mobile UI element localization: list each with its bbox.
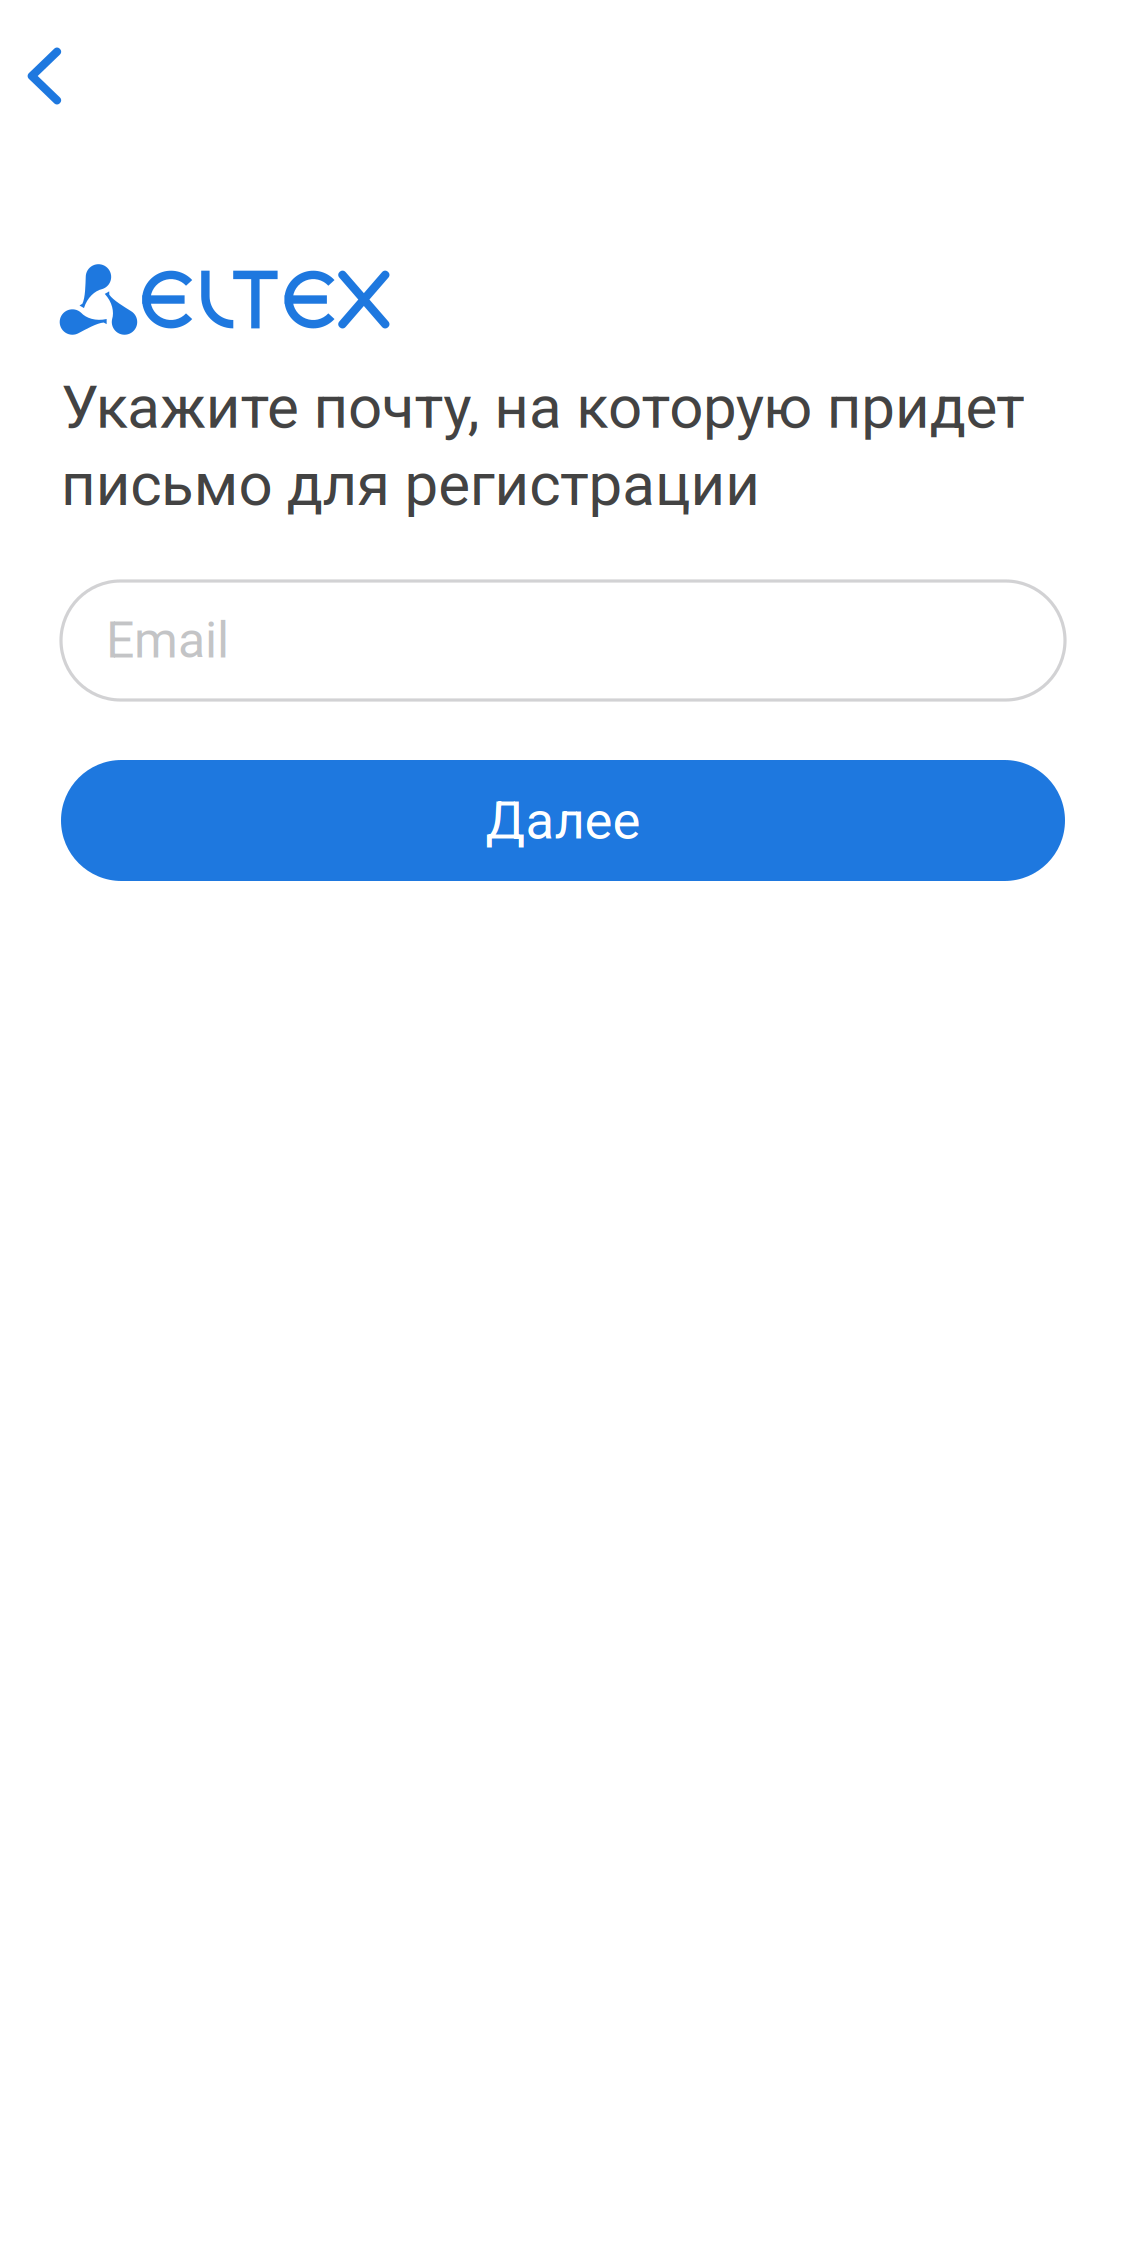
button[interactable]: Далее (61, 760, 1065, 881)
staticText: Email (106, 611, 229, 670)
staticText: Далее (485, 790, 640, 851)
button[interactable]: Back (0, 0, 101, 128)
staticText: Укажите почту, на которую придет письмо … (61, 372, 1025, 520)
button[interactable]: Email (61, 581, 1065, 700)
